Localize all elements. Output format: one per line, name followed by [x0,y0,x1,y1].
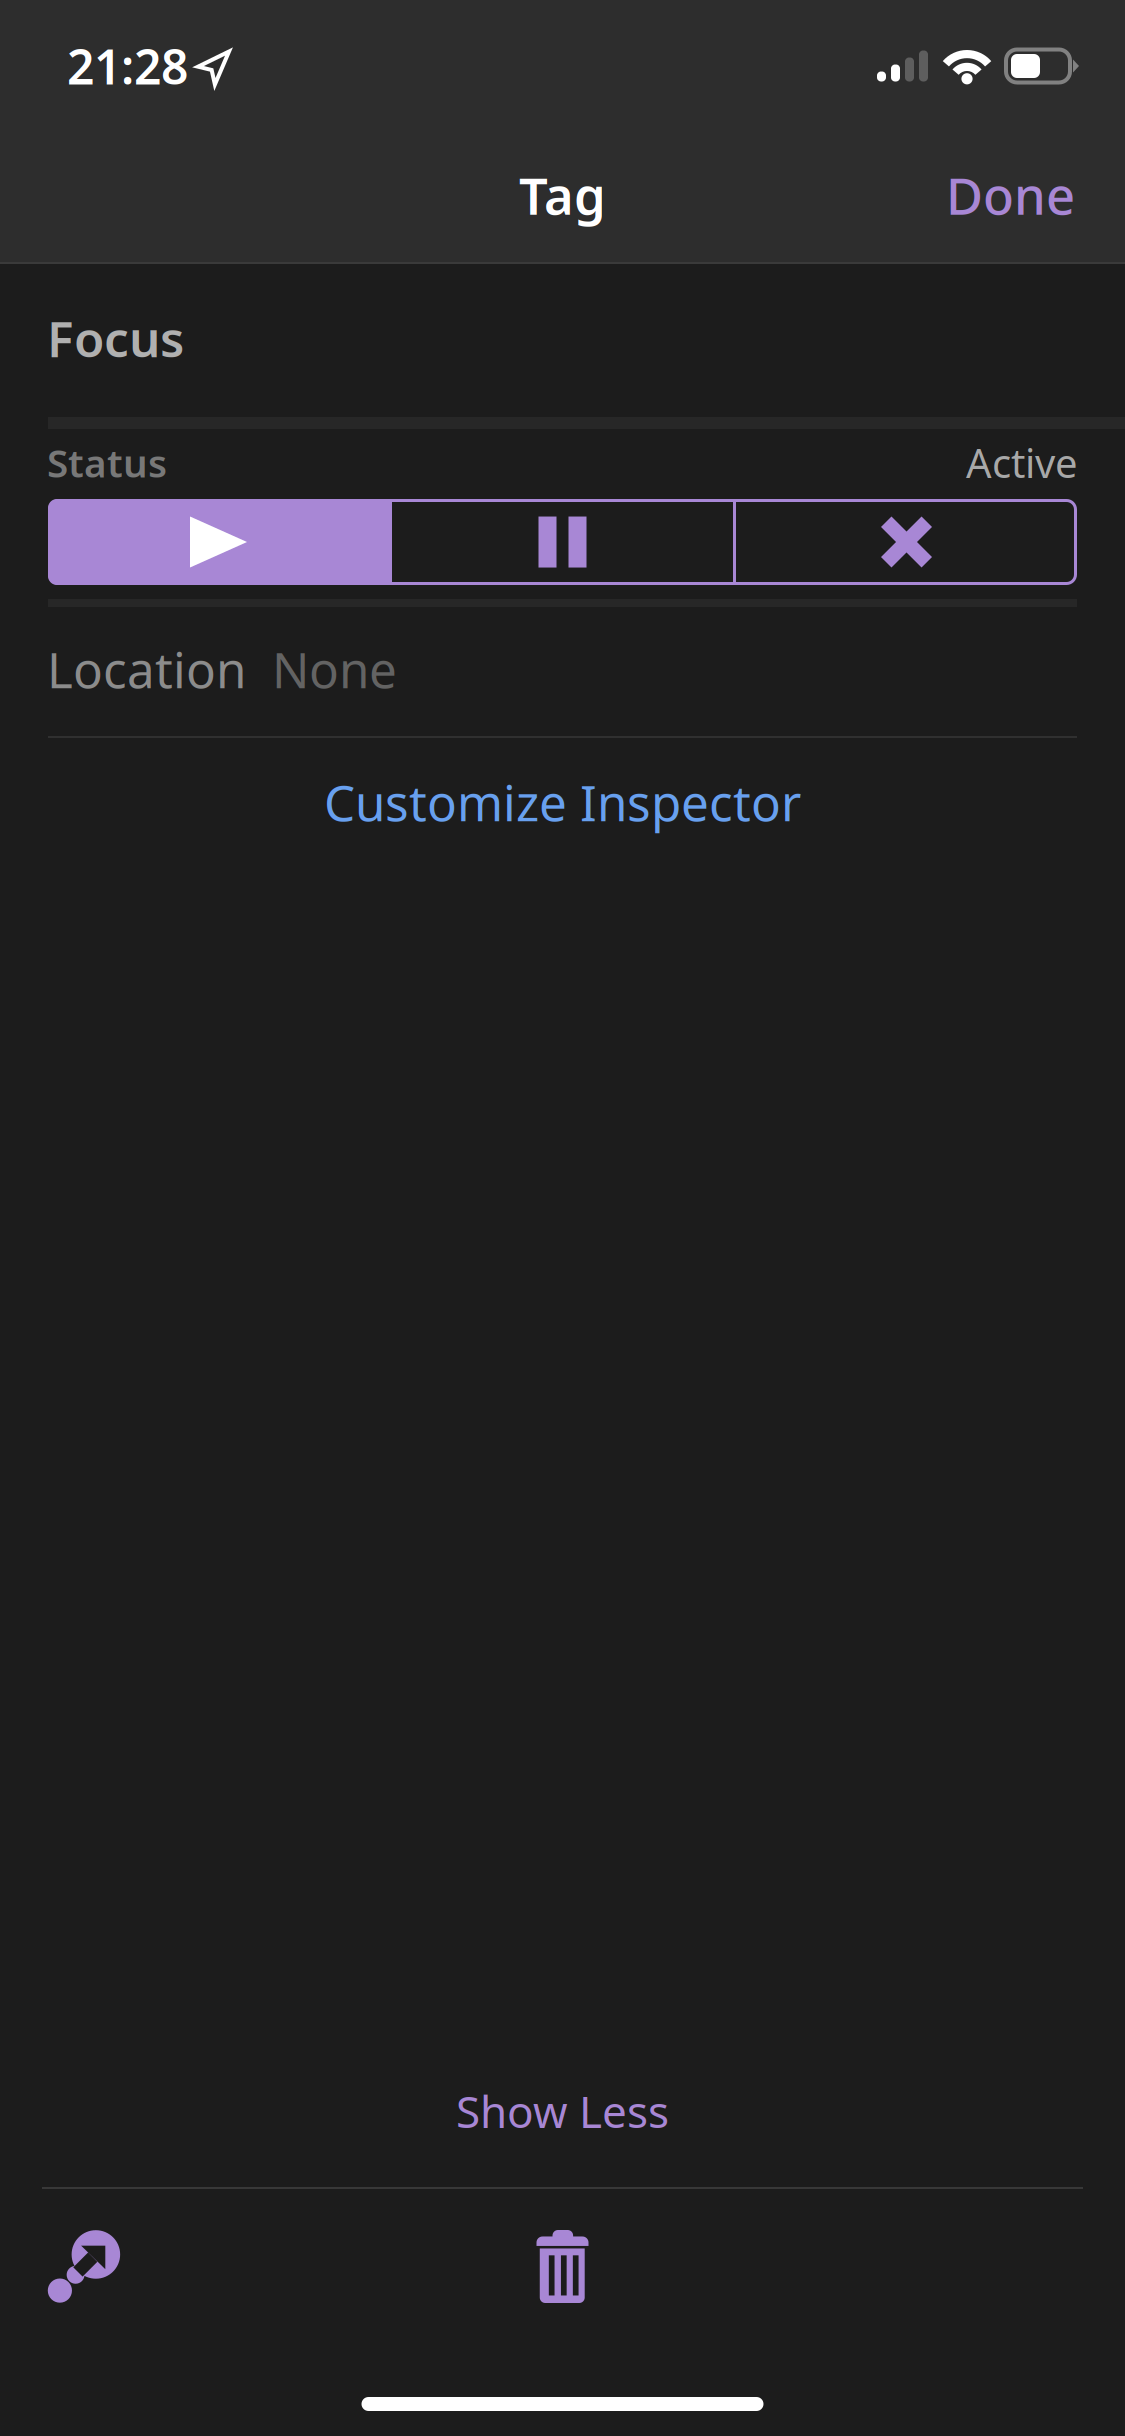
button[interactable]: Show Less [0,2082,1125,2140]
staticText: Done [946,161,1075,229]
staticText: Location [47,636,246,702]
staticText: Focus [47,305,184,371]
button[interactable]: Delete [536,2230,588,2303]
staticText: Show Less [456,2082,669,2140]
button[interactable]: Open link [48,2230,120,2303]
button[interactable]: Done [906,141,1125,253]
staticText: None [246,636,397,702]
button[interactable]: Pause [392,499,733,585]
button[interactable]: Location [0,636,1125,702]
staticText: 21:28 [67,34,188,98]
button[interactable]: Drop [736,499,1077,585]
staticText: Status [47,437,167,488]
button[interactable]: Start [48,499,389,585]
staticText: Customize Inspector [324,769,801,835]
staticText: Active [966,436,1078,489]
staticText: Tag [519,161,606,229]
button[interactable]: Customize Inspector [0,769,1125,835]
